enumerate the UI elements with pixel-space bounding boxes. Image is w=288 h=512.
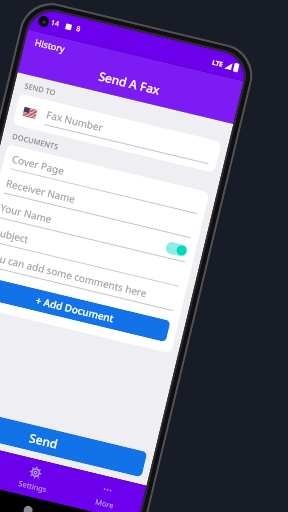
- staticText: LTE: [211, 58, 224, 69]
- other: Home: [23, 505, 34, 512]
- staticText: 14: [50, 18, 61, 30]
- button[interactable]: + Add Document: [0, 276, 171, 342]
- staticText: + Add Document: [34, 293, 115, 325]
- staticText: Subject: [0, 224, 183, 283]
- staticText: Send A Fax: [97, 68, 162, 98]
- button[interactable]: Fax Number: [12, 93, 222, 173]
- button[interactable]: More: [66, 468, 147, 512]
- staticText: Settings: [18, 478, 48, 494]
- button[interactable]: History: [31, 33, 69, 57]
- button[interactable]: Your Name: [0, 200, 189, 262]
- staticText: Send: [28, 429, 60, 452]
- button[interactable]: Receive: [0, 434, 3, 488]
- button[interactable]: [164, 241, 189, 258]
- button[interactable]: Subject: [0, 224, 183, 287]
- button[interactable]: Cover Page: [10, 152, 201, 214]
- staticText: Your Name: [0, 200, 168, 253]
- staticText: You can add some comments here: [0, 249, 177, 307]
- button[interactable]: Send: [0, 403, 147, 477]
- button[interactable]: Settings: [0, 451, 75, 505]
- staticText: More: [94, 496, 115, 511]
- staticText: 8: [75, 24, 82, 35]
- staticText: SEND TO: [23, 80, 57, 98]
- button[interactable]: Receiver Name: [4, 176, 195, 238]
- staticText: Receiver Name: [5, 176, 195, 234]
- staticText: DOCUMENTS: [11, 131, 59, 152]
- button[interactable]: You can add some comments here: [0, 249, 177, 311]
- staticText: Fax Number: [45, 107, 105, 135]
- staticText: Cover Page: [11, 152, 201, 210]
